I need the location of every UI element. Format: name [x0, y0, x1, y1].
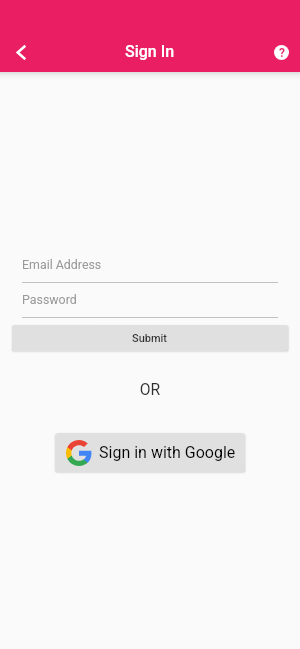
staticText: Sign In: [125, 42, 175, 61]
staticText: Submit: [132, 332, 168, 345]
staticText: Password: [22, 292, 77, 307]
button[interactable]: Back: [1, 32, 41, 72]
staticText: OR: [0, 380, 300, 398]
button[interactable]: Sign in with Google: [55, 433, 245, 472]
button[interactable]: Password: [22, 290, 278, 318]
button[interactable]: Submit: [12, 325, 288, 351]
staticText: ?: [279, 46, 285, 60]
button[interactable]: Email Address: [22, 255, 278, 283]
staticText: Sign in with Google: [99, 443, 236, 462]
button[interactable]: Help: [261, 32, 300, 72]
staticText: Email Address: [22, 257, 102, 272]
